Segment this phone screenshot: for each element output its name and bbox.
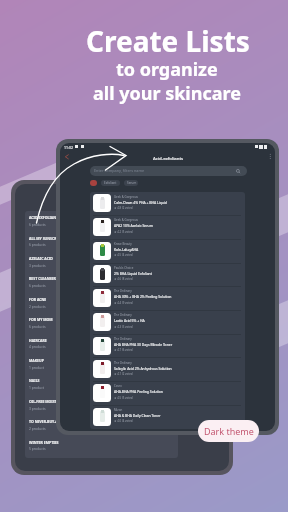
staticText: Kale-Lalu-yAHA — [114, 247, 139, 252]
staticText: 1 product — [29, 385, 44, 389]
staticText: 6 products — [29, 242, 46, 246]
staticText: ★ 4.4 (9 votes) — [114, 301, 133, 305]
button[interactable] — [25, 333, 178, 353]
staticText: Dark theme — [204, 425, 254, 437]
staticText: ALL MY SUNSCREENS — [29, 236, 66, 241]
button[interactable] — [90, 166, 247, 176]
button[interactable] — [25, 394, 178, 414]
staticText: 1 product — [29, 365, 44, 369]
staticText: 2% BHA Liquid Exfoliant — [114, 271, 152, 276]
button[interactable] — [25, 435, 178, 455]
button[interactable] — [25, 231, 178, 251]
staticText: all your skincare — [93, 81, 241, 106]
staticText: 2 products — [29, 304, 46, 308]
staticText: ACID EXFOLIANTS — [29, 215, 60, 220]
staticText: AHA & BHA Daily Clean Toner — [114, 413, 161, 418]
button[interactable] — [124, 180, 138, 186]
staticText: WINTER EMPTIES — [29, 440, 59, 445]
staticText: AZELAIC ACID — [29, 256, 53, 261]
staticText: ★ 4.2 (5 votes) — [114, 230, 133, 234]
staticText: ★ 4.0 (4 votes) — [114, 419, 133, 423]
staticText: 5 products — [29, 446, 46, 450]
staticText: TO NEVER-BUY-AG. — [29, 419, 62, 424]
staticText: to organize — [116, 57, 218, 82]
staticText: Calm-Down 4% PHA + BHA Liquid — [114, 200, 167, 205]
button[interactable] — [25, 211, 178, 231]
staticText: Salicylic Acid 2% Anhydrous Solution — [114, 366, 172, 371]
button[interactable] — [25, 292, 178, 312]
staticText: ★ 4.3 (3 votes) — [114, 325, 133, 329]
staticText: HAIRCARE — [29, 338, 47, 343]
staticText: NAILS — [29, 378, 40, 383]
button[interactable]: Back — [61, 152, 75, 166]
staticText: Lactic Acid 5% + HA — [114, 318, 145, 323]
button[interactable] — [90, 334, 245, 358]
button[interactable] — [90, 357, 245, 381]
button[interactable] — [101, 180, 120, 186]
button[interactable] — [90, 405, 245, 429]
staticText: Acid-exfoliants — [153, 155, 184, 161]
staticText: ★ 4.8 (2 votes) — [114, 206, 133, 210]
button[interactable] — [25, 415, 178, 435]
staticText: ★ 4.5 (5 votes) — [114, 396, 133, 400]
staticText: AHA.BHA PHA Peeling Solution — [114, 389, 163, 394]
staticText: BEST CLEANSERS — [29, 276, 58, 281]
staticText: APA2 10% Azelaic Serum — [114, 223, 153, 228]
staticText: Exfoliant — [104, 181, 117, 185]
staticText: The Ordinary — [114, 313, 132, 317]
button[interactable] — [90, 239, 245, 263]
staticText: 6 products — [29, 283, 46, 287]
staticText: Cosrx — [114, 384, 122, 388]
button[interactable] — [90, 180, 97, 186]
button[interactable] — [90, 192, 245, 216]
staticText: Krave Beauty — [114, 242, 132, 246]
button[interactable]: Dark theme — [198, 420, 259, 442]
button[interactable] — [90, 381, 245, 405]
staticText: Geek & Gorgeous — [114, 195, 138, 199]
button[interactable] — [25, 252, 178, 272]
button[interactable]: More options — [261, 152, 275, 166]
staticText: The Ordinary — [114, 337, 132, 341]
staticText: The Ordinary — [114, 289, 132, 293]
button[interactable] — [25, 272, 178, 292]
staticText: 3 products — [29, 406, 46, 410]
button[interactable] — [25, 374, 178, 394]
staticText: FOR MY MOM — [29, 317, 53, 322]
staticText: The Ordinary — [114, 361, 132, 365]
staticText: AHA BHA PHA 30 Days Miracle Toner — [114, 342, 173, 347]
staticText: 3 products — [29, 263, 46, 267]
staticText: Enter company, filters name — [94, 168, 145, 173]
staticText: Create Lists — [86, 22, 250, 60]
button[interactable] — [90, 286, 245, 310]
staticText: 4 products — [29, 344, 46, 348]
staticText: ★ 4.6 (8 votes) — [114, 277, 133, 281]
staticText: Mizon — [114, 408, 123, 412]
staticText: FOR ACNE — [29, 297, 47, 302]
button[interactable] — [90, 215, 245, 239]
staticText: MAKEUP — [29, 358, 44, 363]
staticText: ★ 4.1 (2 votes) — [114, 372, 133, 376]
staticText: Geek & Gorgeous — [114, 218, 138, 222]
staticText: 6 products — [29, 324, 46, 328]
staticText: Paula's Choice — [114, 266, 134, 270]
staticText: ⋮ — [267, 152, 273, 159]
staticText: 11:02 — [64, 145, 73, 150]
button[interactable] — [90, 310, 245, 334]
staticText: 6 products — [29, 222, 46, 226]
staticText: ★ 4.5 (4 votes) — [114, 253, 133, 257]
staticText: Serum — [127, 181, 137, 185]
button[interactable] — [25, 313, 178, 333]
staticText: OIL-FREE MOIST. — [29, 399, 58, 404]
staticText: AHA 30% + BHA 2% Peeling Solution — [114, 294, 172, 299]
button[interactable] — [25, 354, 178, 374]
staticText: 2 products — [29, 426, 46, 430]
button[interactable] — [90, 263, 245, 287]
staticText: ★ 4.7 (6 votes) — [114, 348, 133, 352]
